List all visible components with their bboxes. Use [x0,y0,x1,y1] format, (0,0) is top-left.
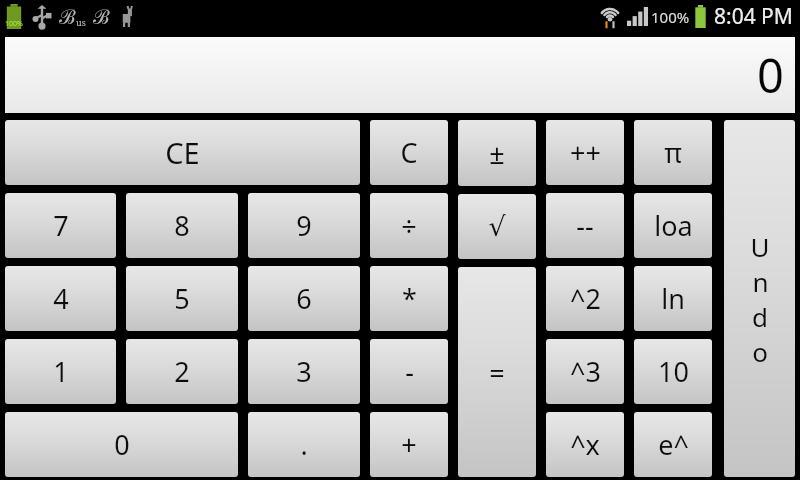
button[interactable]: 6 [248,266,360,331]
staticText: 2 [174,353,190,390]
button[interactable]: = [458,267,536,477]
button[interactable]: + [370,412,448,477]
staticText: ± [489,135,505,172]
button[interactable]: ^x [546,412,624,477]
button[interactable]: e^ [634,412,712,477]
staticText: ℬ [93,3,110,30]
staticText: CE [165,133,200,172]
button[interactable]: 10 [634,339,712,404]
staticText: ln [661,280,685,317]
staticText: - [405,353,414,390]
staticText: 0 [757,43,784,107]
button[interactable]: ÷ [370,193,448,258]
button[interactable]: ++ [546,120,624,185]
staticText: ℬ [59,3,76,30]
staticText: 100% [5,19,23,29]
staticText: 6 [296,280,312,317]
staticText: us [76,16,86,28]
button[interactable]: - [370,339,448,404]
staticText: 0 [114,426,130,463]
staticText: 10 [658,353,689,390]
staticText: + [401,426,417,463]
staticText: ++ [570,134,601,171]
staticText: C [400,134,418,171]
button[interactable]: . [248,412,360,477]
staticText: ÷ [401,207,417,244]
staticText: 1 [53,353,69,390]
button[interactable]: ± [458,120,536,186]
staticText: 100% [651,7,690,27]
staticText: U [750,229,770,264]
staticText: 9 [296,207,312,244]
button[interactable]: π [634,120,712,185]
button[interactable]: ln [634,266,712,331]
button[interactable]: 5 [126,266,238,331]
button[interactable]: C [370,120,448,185]
button[interactable]: 0 [5,412,238,477]
button[interactable]: 1 [5,339,116,404]
staticText: loa [654,207,693,244]
staticText: π [664,134,682,171]
staticText: d [752,299,768,334]
button[interactable]: 9 [248,193,360,258]
button[interactable]: 7 [5,193,116,258]
button[interactable]: ^2 [546,266,624,331]
staticText: 4 [53,280,69,317]
staticText: ^x [570,426,600,463]
staticText: ^2 [570,280,601,317]
button[interactable]: loa [634,193,712,258]
staticText: ^3 [570,353,601,390]
button[interactable]: 8 [126,193,238,258]
button[interactable]: ^3 [546,339,624,404]
button[interactable]: * [370,266,448,331]
staticText: . [300,426,308,463]
staticText: e^ [658,426,689,463]
button[interactable]: 4 [5,266,116,331]
button[interactable]: √ [458,194,536,259]
staticText: √ [488,211,506,242]
button[interactable]: U [724,120,795,477]
staticText: n [752,264,769,299]
staticText: o [752,334,768,369]
staticText: 7 [53,207,69,244]
staticText: 3 [296,353,312,390]
button[interactable]: -- [546,193,624,258]
staticText: 8 [174,207,190,244]
staticText: = [489,354,505,391]
button[interactable]: 3 [248,339,360,404]
staticText: 8:04 PM [714,2,793,31]
staticText: * [402,280,417,317]
staticText: 5 [174,280,190,317]
staticText: -- [576,207,594,244]
button[interactable]: 2 [126,339,238,404]
button[interactable]: CE [5,120,360,185]
